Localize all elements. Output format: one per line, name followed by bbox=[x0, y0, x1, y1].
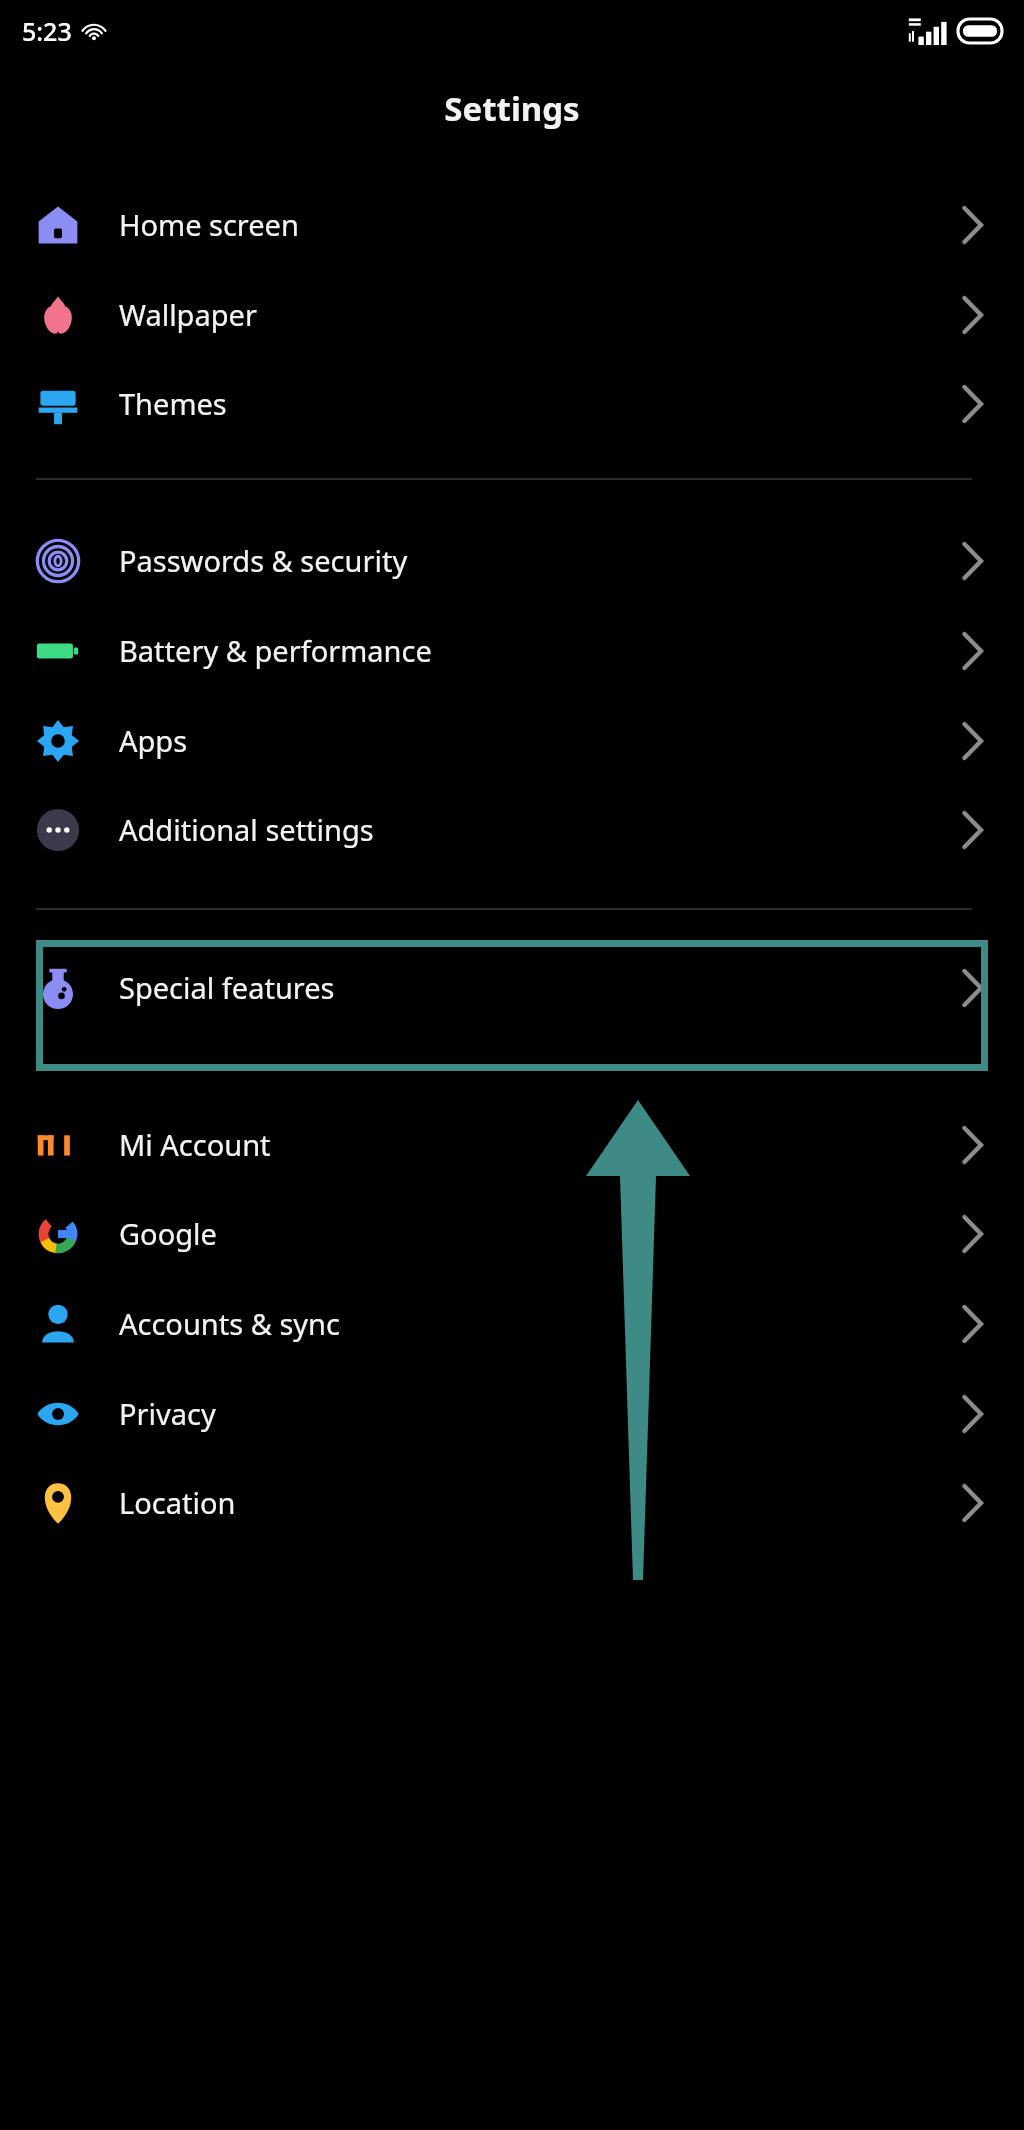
button[interactable]: Wallpaper bbox=[0, 270, 1024, 359]
staticText: Additional settings bbox=[119, 810, 374, 849]
staticText: Themes bbox=[119, 384, 227, 423]
staticText: Wallpaper bbox=[119, 295, 257, 334]
button[interactable]: Google bbox=[0, 1189, 1024, 1278]
button[interactable]: Privacy bbox=[0, 1369, 1024, 1458]
staticText: Settings bbox=[0, 86, 1024, 131]
button[interactable]: Battery & performance bbox=[0, 606, 1024, 695]
staticText: Accounts & sync bbox=[119, 1304, 340, 1343]
staticText: Mi Account bbox=[119, 1125, 271, 1164]
staticText: Apps bbox=[119, 721, 188, 760]
button[interactable]: Mi Account bbox=[0, 1100, 1024, 1189]
button[interactable]: Location bbox=[0, 1458, 1024, 1547]
staticText: Passwords & security bbox=[119, 541, 408, 580]
staticText: Special features bbox=[119, 968, 335, 1007]
button[interactable]: Home screen bbox=[0, 180, 1024, 269]
staticText: Home screen bbox=[119, 205, 299, 244]
button[interactable]: Special features bbox=[0, 943, 1024, 1032]
staticText: Privacy bbox=[119, 1394, 216, 1433]
staticText: Battery & performance bbox=[119, 631, 432, 670]
button[interactable]: Apps bbox=[0, 696, 1024, 785]
button[interactable]: Accounts & sync bbox=[0, 1279, 1024, 1368]
button[interactable]: Passwords & security bbox=[0, 516, 1024, 605]
button[interactable]: Themes bbox=[0, 359, 1024, 448]
staticText: Location bbox=[119, 1483, 236, 1522]
staticText: Google bbox=[119, 1214, 217, 1253]
staticText: 5:23 bbox=[22, 14, 72, 48]
button[interactable]: Additional settings bbox=[0, 785, 1024, 874]
